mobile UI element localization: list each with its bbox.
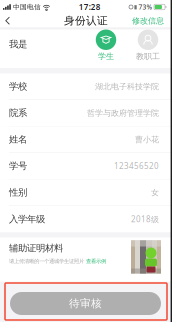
staticText: 性别 xyxy=(9,187,27,198)
staticText: 我是 xyxy=(9,38,27,50)
staticText: 2018级 xyxy=(131,214,159,224)
button[interactable]: 学生 xyxy=(85,29,127,61)
button[interactable]: 院系 xyxy=(0,100,172,126)
staticText: 院系 xyxy=(9,107,27,119)
staticText: 中国电信 xyxy=(13,3,41,11)
button[interactable]: 性别 xyxy=(0,179,172,206)
button[interactable]: Back xyxy=(0,13,16,28)
staticText: 女 xyxy=(151,188,159,197)
button[interactable]: 教职工 xyxy=(127,29,169,61)
staticText: 姓名 xyxy=(9,134,27,145)
staticText: 123456520 xyxy=(114,161,159,171)
staticText: 入学年级 xyxy=(9,213,45,225)
staticText: 请上传清晰的一个通城学生证照片 xyxy=(9,258,84,265)
button[interactable]: 学号 xyxy=(0,153,172,179)
staticText: 查看示例 xyxy=(86,258,106,265)
staticText: 学号 xyxy=(9,160,27,172)
staticText: 73% xyxy=(138,3,152,11)
button[interactable]: 入学年级 xyxy=(0,206,172,232)
staticText: 修改信息 xyxy=(132,16,164,26)
button[interactable]: 学校 xyxy=(0,73,172,100)
staticText: 17:28 xyxy=(79,2,101,12)
button[interactable]: 查看示例 xyxy=(86,258,106,265)
staticText: 教职工 xyxy=(136,51,160,61)
staticText: 哲学与政府管理学院 xyxy=(87,108,159,118)
staticText: 学校 xyxy=(9,81,27,92)
button[interactable]: Student card photo xyxy=(131,240,161,273)
staticText: 身份认证 xyxy=(64,14,108,27)
staticText: 学生 xyxy=(98,51,114,61)
staticText: 湖北电子科技学院 xyxy=(95,82,159,91)
staticText: 待审核 xyxy=(69,297,102,310)
button[interactable]: 修改信息 xyxy=(126,13,172,29)
button[interactable]: 待审核 xyxy=(10,292,161,315)
staticText: 辅助证明材料 xyxy=(9,242,63,254)
staticText: 曹小花 xyxy=(135,135,159,144)
button[interactable]: 姓名 xyxy=(0,126,172,153)
